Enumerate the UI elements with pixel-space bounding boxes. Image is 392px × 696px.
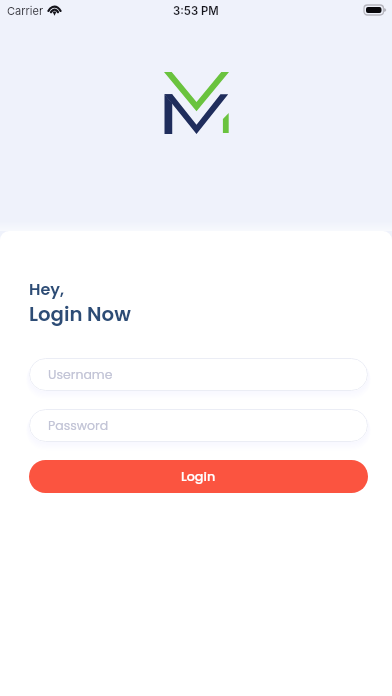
other: Battery full: [364, 5, 386, 15]
button[interactable]: Password: [29, 409, 368, 442]
other: Wi-Fi: [47, 3, 62, 14]
staticText: Username: [48, 366, 113, 383]
staticText: Hey,: [29, 278, 65, 300]
button[interactable]: Login: [29, 460, 368, 493]
staticText: 3:53 PM: [173, 4, 219, 18]
staticText: Carrier: [7, 4, 44, 17]
button[interactable]: Username: [29, 358, 368, 391]
staticText: Login Now: [29, 300, 131, 328]
staticText: Password: [48, 417, 109, 434]
staticText: Login: [181, 468, 216, 486]
